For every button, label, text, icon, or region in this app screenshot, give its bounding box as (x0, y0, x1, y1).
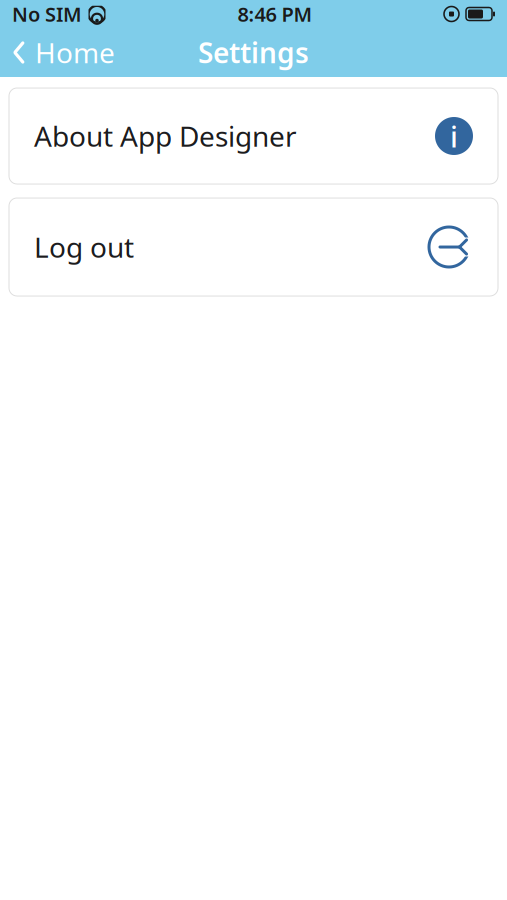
button[interactable]: Log out (9, 198, 498, 296)
staticText: Settings (198, 34, 309, 71)
staticText: About App Designer (34, 117, 297, 155)
staticText: Home (35, 34, 115, 71)
staticText: 8:46 PM (237, 1, 312, 27)
staticText: i (450, 116, 458, 155)
staticText: Log out (34, 228, 134, 266)
staticText: No SIM (12, 1, 82, 27)
button[interactable]: About App Designer (9, 88, 498, 184)
button[interactable]: Home (0, 28, 127, 77)
